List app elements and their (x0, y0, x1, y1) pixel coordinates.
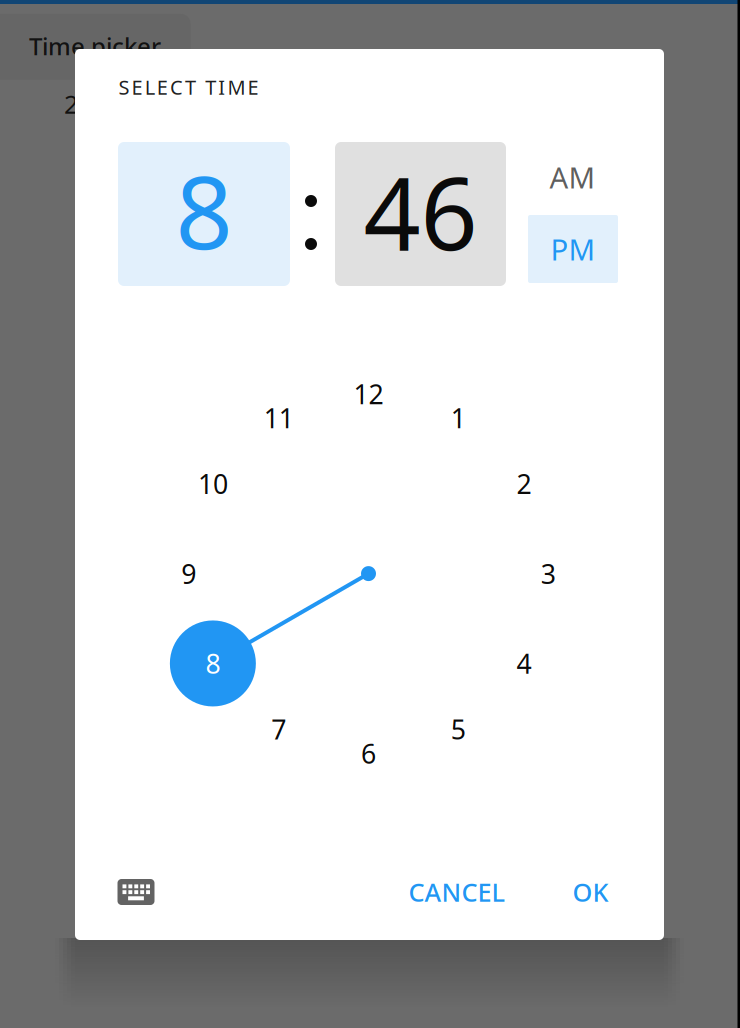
staticText: 20:46 (64, 87, 127, 121)
staticText: 8 (175, 144, 232, 277)
staticText: 11 (264, 400, 294, 436)
button[interactable]: PM (528, 215, 618, 283)
button[interactable]: 46 (335, 142, 506, 286)
staticText: 12 (353, 376, 383, 412)
staticText: 3 (541, 556, 556, 591)
button[interactable]: OK (560, 870, 620, 914)
staticText: Time picker (29, 30, 161, 62)
staticText: 46 (363, 145, 477, 278)
staticText: SELECT TIME (118, 74, 258, 100)
staticText: 6 (361, 736, 376, 771)
staticText: 5 (451, 711, 466, 747)
staticText: CANCEL (408, 875, 505, 909)
staticText: 8 (205, 646, 220, 681)
button[interactable]: Switch to text input (117, 879, 154, 905)
button[interactable]: AM (527, 149, 617, 205)
staticText: OK (572, 875, 608, 909)
staticText: 2 (517, 466, 532, 501)
staticText: 9 (181, 556, 196, 591)
staticText: 10 (198, 466, 228, 501)
staticText: 7 (271, 711, 286, 747)
button[interactable]: 8 (118, 142, 290, 286)
staticText: 1 (451, 400, 466, 436)
button[interactable]: CANCEL (397, 870, 517, 914)
staticText: 4 (517, 646, 532, 681)
staticText: AM (549, 157, 595, 196)
staticText: PM (550, 229, 595, 268)
